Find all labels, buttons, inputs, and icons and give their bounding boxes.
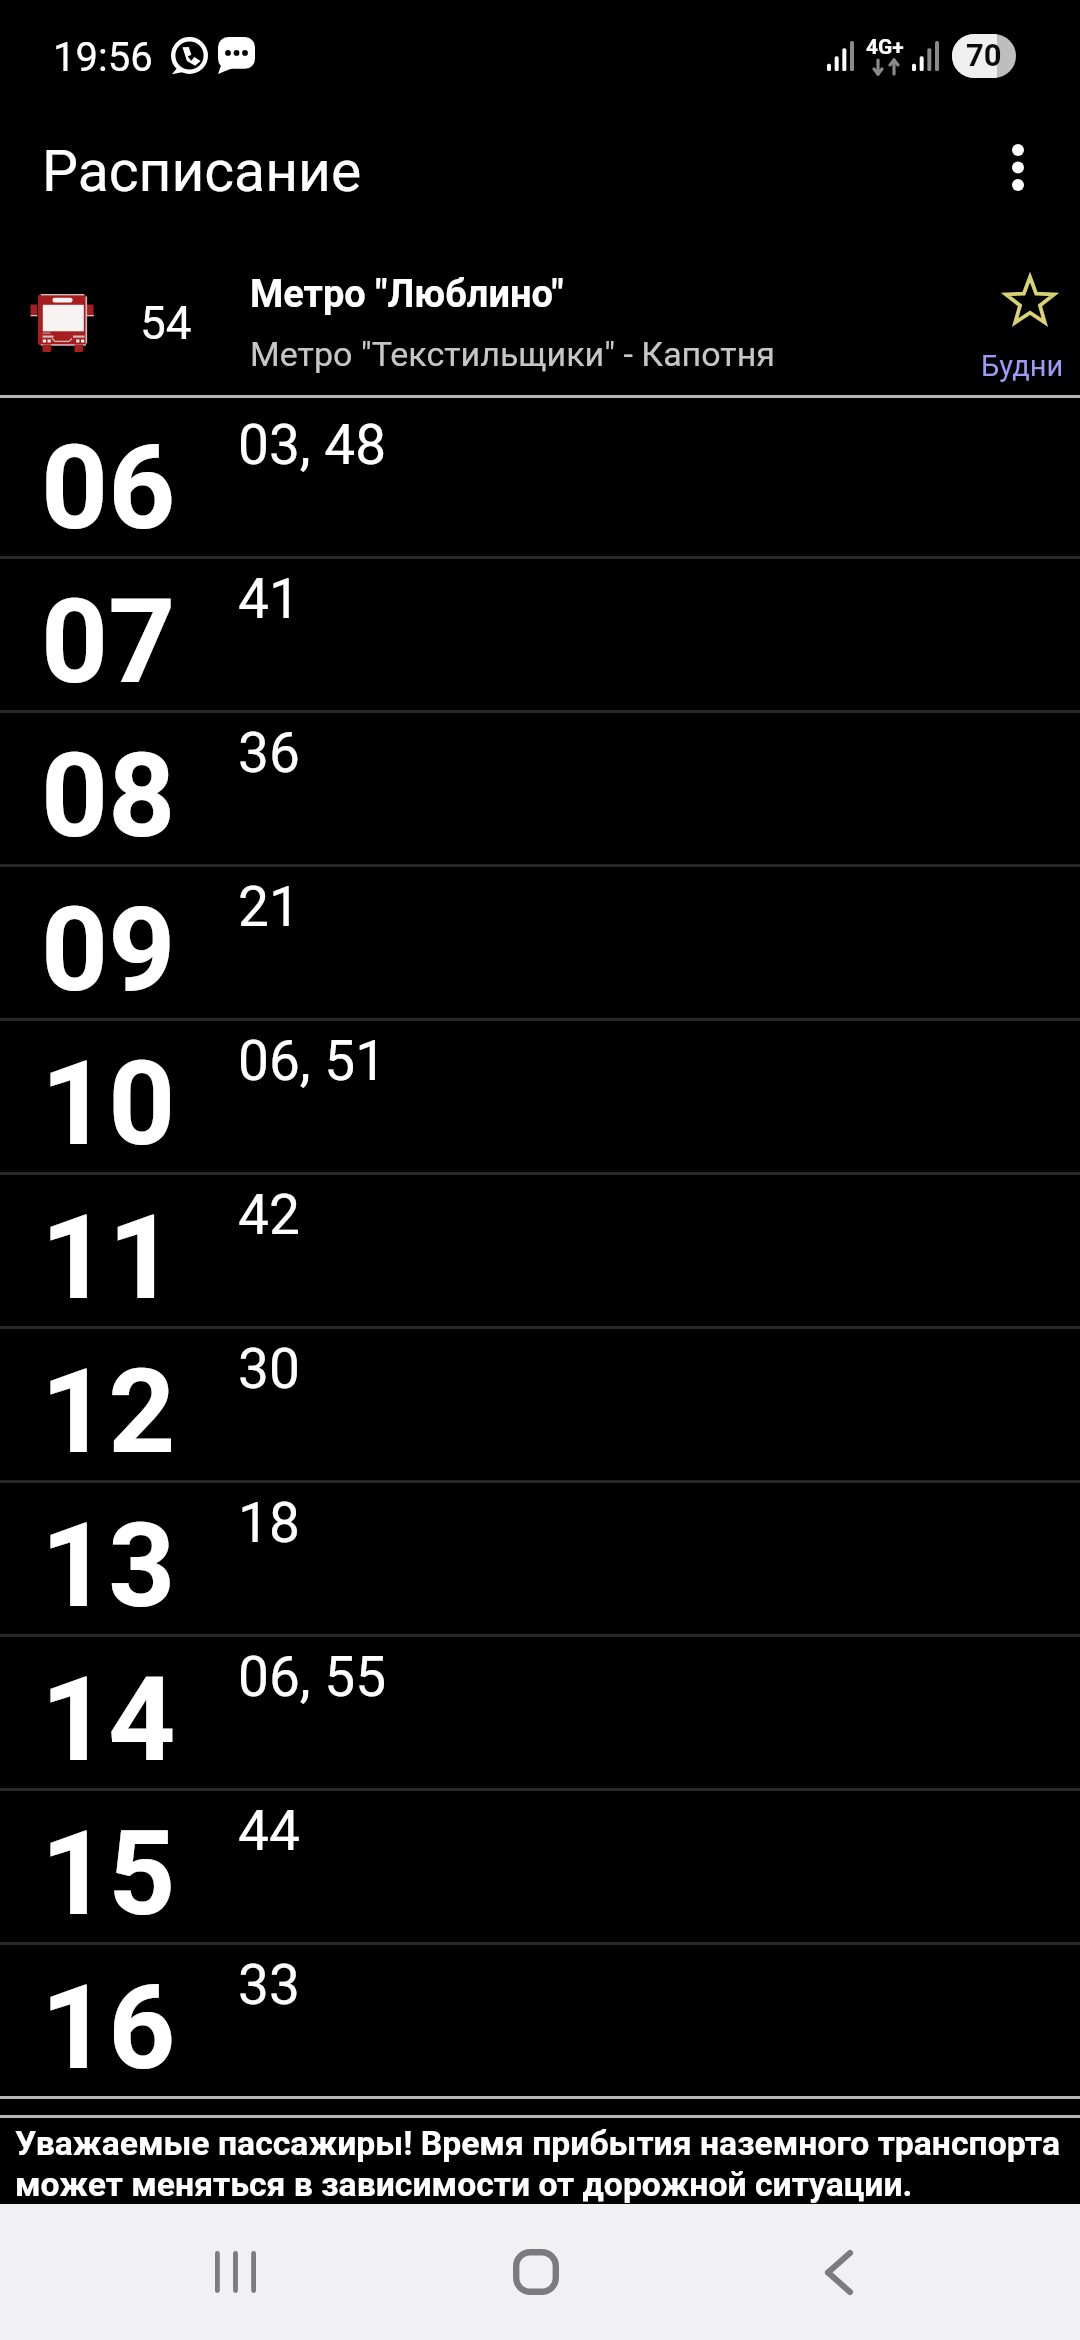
staticText: 44	[238, 1799, 300, 1863]
staticText: 33	[238, 1953, 300, 2017]
staticText: 21	[238, 875, 300, 939]
staticText: 11	[41, 1189, 176, 1326]
button[interactable]: 06	[0, 398, 1080, 556]
staticText: Расписание	[42, 138, 362, 205]
staticText: Уважаемые пассажиры! Время прибытия назе…	[15, 2124, 1075, 2205]
staticText: 54	[140, 296, 192, 350]
button[interactable]: Recent apps	[144, 2204, 324, 2340]
staticText: Будни	[981, 349, 1064, 383]
staticText: 16	[41, 1959, 176, 2096]
staticText: 18	[238, 1491, 300, 1555]
staticText: 08	[41, 727, 176, 864]
staticText: Метро "Текстильщики" - Капотня	[250, 334, 775, 374]
staticText: 70	[966, 37, 1002, 73]
staticText: 42	[238, 1183, 300, 1247]
button[interactable]: Home	[446, 2204, 626, 2340]
button[interactable]: 07	[0, 559, 1080, 710]
staticText: 03, 48	[238, 413, 387, 477]
staticText: 15	[41, 1805, 176, 1942]
staticText: 06, 51	[238, 1029, 387, 1093]
staticText: 41	[238, 567, 300, 631]
button[interactable]: 10	[0, 1021, 1080, 1172]
staticText: 14	[41, 1651, 176, 1788]
staticText: 10	[41, 1035, 176, 1172]
staticText: 09	[41, 881, 176, 1018]
staticText: 07	[41, 573, 176, 710]
button[interactable]: More options	[958, 110, 1080, 250]
button[interactable]: 14	[0, 1637, 1080, 1788]
button[interactable]: Back	[749, 2204, 929, 2340]
staticText: 4G+	[866, 35, 904, 60]
staticText: 12	[41, 1343, 176, 1480]
button[interactable]: 13	[0, 1483, 1080, 1634]
staticText: 36	[238, 721, 300, 785]
button[interactable]: 15	[0, 1791, 1080, 1942]
button[interactable]: 16	[0, 1945, 1080, 2096]
button[interactable]: 54	[0, 250, 1080, 395]
button[interactable]: 12	[0, 1329, 1080, 1480]
staticText: 06, 55	[238, 1645, 387, 1709]
staticText: 13	[41, 1497, 176, 1634]
staticText: 19:56	[53, 34, 153, 81]
staticText: 30	[238, 1337, 300, 1401]
button[interactable]: 11	[0, 1175, 1080, 1326]
button[interactable]: Toggle favourite	[965, 250, 1080, 395]
button[interactable]: 08	[0, 713, 1080, 864]
other: Toggle favourite	[1006, 277, 1054, 325]
button[interactable]: 09	[0, 867, 1080, 1018]
staticText: Метро "Люблино"	[250, 272, 564, 317]
staticText: 06	[41, 419, 176, 556]
